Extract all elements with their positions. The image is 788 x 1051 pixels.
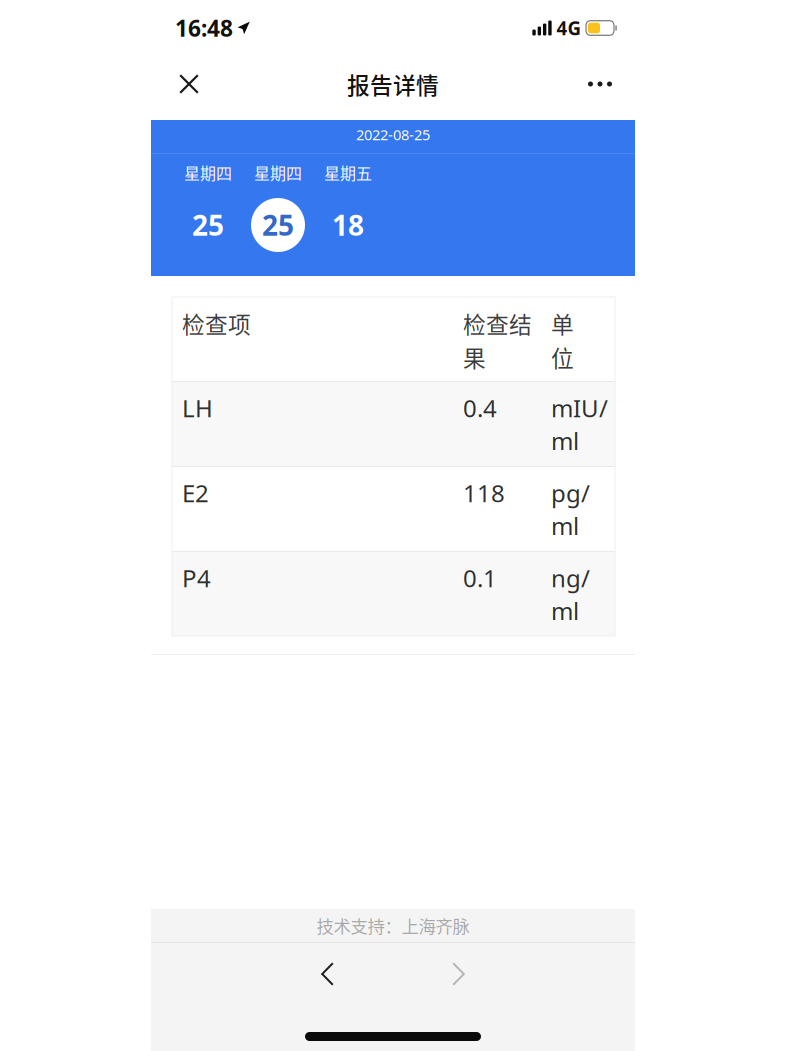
button[interactable]: Next page [436,946,481,1002]
staticText: 位 [551,341,574,374]
staticText: 0.1 [463,562,497,594]
staticText: P4 [182,562,211,594]
staticText: 星期四 [184,161,232,184]
staticText: 18 [332,206,364,244]
button[interactable]: 星期四 [173,154,243,253]
button[interactable]: 星期五 [313,154,383,253]
staticText: 报告详情 [347,68,439,100]
staticText: 4G [556,16,581,40]
button[interactable]: 星期四 [243,154,313,253]
staticText: 16:48 [175,13,233,43]
button[interactable]: Previous page [305,946,350,1002]
staticText: 星期四 [254,161,302,184]
staticText: ml [551,595,579,627]
staticText: ng/ [551,562,590,594]
staticText: ml [551,510,579,542]
staticText: 118 [463,477,505,509]
staticText: 25 [192,206,224,244]
staticText: LH [182,392,213,424]
staticText: E2 [182,477,209,509]
staticText: 25 [262,206,294,244]
staticText: mIU/ [551,392,608,424]
staticText: 单 [551,307,574,340]
staticText: 果 [463,341,486,374]
staticText: 2022-08-25 [356,125,430,144]
button[interactable]: Close [163,58,215,110]
staticText: ml [551,425,579,457]
button[interactable]: More options [572,65,628,103]
staticText: 技术支持：上海齐脉 [316,913,469,938]
staticText: 检查结 [463,307,532,340]
staticText: pg/ [551,477,590,509]
staticText: 0.4 [463,392,497,424]
staticText: 检查项 [182,307,251,340]
staticText: 星期五 [324,161,372,184]
